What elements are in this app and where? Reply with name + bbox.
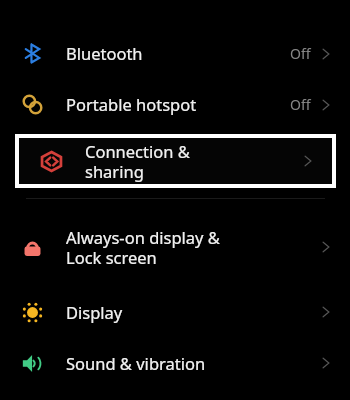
staticText: Portable hotspot <box>66 93 197 115</box>
staticText: Off <box>290 95 311 114</box>
staticText: Display <box>66 301 123 323</box>
other: Bluetooth <box>22 43 43 64</box>
button[interactable]: Portable hotspot <box>0 83 350 125</box>
other: Always-on display and Lock screen <box>22 237 43 258</box>
other: Display <box>22 302 43 323</box>
button[interactable]: Bluetooth <box>0 32 350 74</box>
button[interactable]: Sound and vibration <box>0 342 350 384</box>
staticText: Connection & sharing <box>85 140 242 183</box>
button[interactable]: Always-on display and Lock screen <box>0 221 350 273</box>
other: Connection and sharing <box>41 151 62 172</box>
staticText: Always-on display & Lock screen <box>66 226 256 269</box>
staticText: Off <box>290 44 311 63</box>
staticText: Sound & vibration <box>66 352 206 374</box>
other: Sound and vibration <box>22 353 43 374</box>
button[interactable]: Connection and sharing <box>19 138 332 184</box>
staticText: Bluetooth <box>66 42 143 64</box>
other: Portable hotspot <box>22 94 43 115</box>
button[interactable]: Display <box>0 291 350 333</box>
